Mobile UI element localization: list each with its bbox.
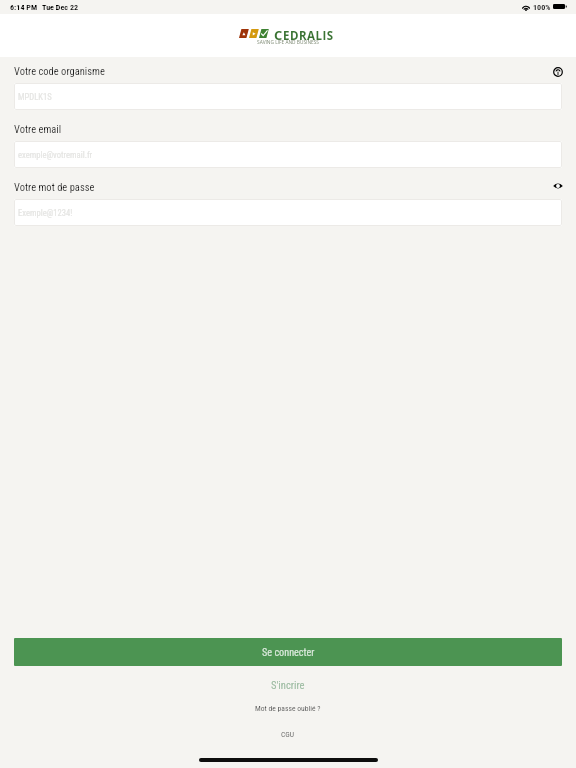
button[interactable]: Se connecter [14, 638, 562, 666]
button[interactable]: MPDLK1S [14, 83, 562, 110]
staticText: exemple@votremail.fr [18, 150, 93, 160]
button[interactable]: Aide [551, 65, 564, 78]
staticText: Tue Dec 22 [42, 2, 79, 11]
button[interactable]: Exemple@1234! [14, 199, 562, 226]
staticText: Exemple@1234! [18, 208, 73, 218]
staticText: Mot de passe oublié ? [255, 704, 321, 713]
staticText: Votre code organisme [14, 65, 105, 77]
staticText: Se connecter [262, 647, 315, 659]
staticText: S'incrire [271, 679, 305, 691]
button[interactable]: Afficher le mot de passe [551, 179, 564, 192]
staticText: Votre mot de passe [14, 181, 95, 193]
button[interactable]: exemple@votremail.fr [14, 141, 562, 168]
staticText: 100% [533, 2, 551, 11]
button[interactable]: Mot de passe oublié ? [0, 704, 576, 716]
staticText: C [274, 26, 283, 44]
button[interactable]: S'incrire [0, 679, 576, 691]
staticText: CGU [281, 730, 295, 739]
button[interactable]: CGU [0, 730, 576, 742]
staticText: MPDLK1S [18, 92, 52, 102]
staticText: 6:14 PM [10, 2, 38, 11]
staticText: Votre email [14, 123, 62, 135]
staticText: SAVING LIFE AND BUSINESS [257, 39, 319, 46]
staticText: EDRALIS [283, 28, 334, 44]
